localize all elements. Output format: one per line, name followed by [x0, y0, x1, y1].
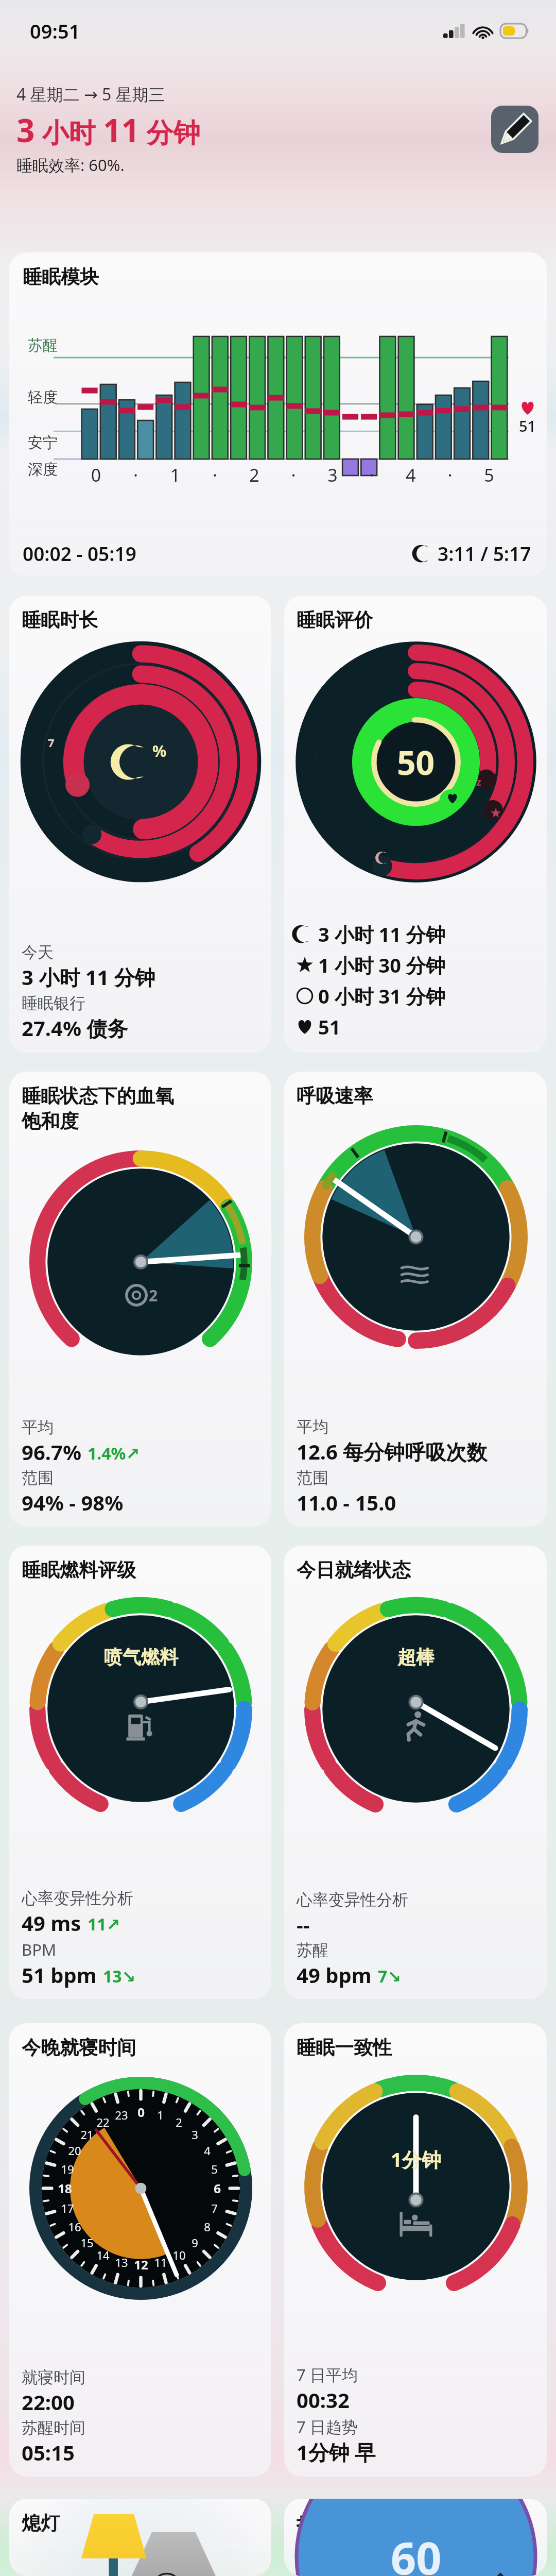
staticText: 49 bpm: [297, 1961, 372, 1989]
staticText: 2: [149, 1285, 158, 1306]
staticText: 50: [397, 740, 435, 785]
staticText: 22:00: [22, 2388, 75, 2416]
staticText: 0: [137, 2104, 145, 2121]
staticText: 今日就绪状态: [297, 1558, 411, 1582]
staticText: 11: [103, 108, 140, 151]
staticText: 5: [470, 463, 509, 487]
button[interactable]: 睡眠燃料评级: [9, 1546, 271, 1999]
staticText: 今晚就寝时间: [22, 2036, 136, 2060]
staticText: 3: [16, 108, 35, 151]
button[interactable]: 呼吸速率: [284, 1072, 547, 1527]
staticText: 睡眠状态下的血氧 饱和度: [22, 1084, 174, 1133]
staticText: 7 日趋势: [297, 2416, 358, 2437]
staticText: ·: [274, 463, 313, 487]
button[interactable]: 睡眠模块: [9, 252, 547, 577]
button[interactable]: 睡眠状态下的血氧 饱和度: [9, 1072, 271, 1527]
staticText: 3:11 / 5:17: [438, 540, 531, 566]
staticText: 11↗: [88, 1913, 120, 1936]
staticText: 2: [176, 2114, 182, 2130]
staticText: 0 小时 31 分钟: [318, 982, 445, 1009]
staticText: 15: [80, 2235, 94, 2250]
staticText: BPM: [22, 1939, 57, 1960]
staticText: 范围: [297, 1468, 328, 1488]
staticText: 11.0 - 15.0: [297, 1488, 396, 1516]
staticText: 睡眠银行: [22, 993, 85, 1013]
staticText: 睡眠燃料评级: [22, 1558, 136, 1582]
staticText: 打开 HeartWatch: [297, 2511, 454, 2537]
staticText: 7: [211, 2200, 218, 2216]
staticText: 深度: [28, 460, 58, 479]
button[interactable]: 今晚就寝时间: [9, 2023, 271, 2477]
staticText: 0: [76, 463, 116, 487]
staticText: 51: [519, 416, 536, 436]
staticText: 21: [80, 2127, 94, 2142]
button[interactable]: 睡眠时长: [9, 596, 271, 1053]
staticText: z: [476, 775, 481, 789]
staticText: 2: [235, 463, 274, 487]
button[interactable]: 睡眠评价: [284, 596, 547, 1053]
staticText: 1 小时 30 分钟: [318, 952, 445, 978]
staticText: 就寝时间: [22, 2367, 85, 2387]
button[interactable]: 编辑: [491, 106, 538, 153]
staticText: 5: [211, 2161, 218, 2177]
staticText: 1: [155, 463, 195, 487]
staticText: 22: [96, 2114, 110, 2130]
staticText: 94% - 98%: [22, 1488, 124, 1516]
button[interactable]: 打开 HeartWatch: [284, 2499, 547, 2576]
staticText: 49 ms: [22, 1909, 81, 1937]
staticText: 苏醒时间: [22, 2418, 85, 2438]
staticText: 51 bpm: [22, 1961, 97, 1989]
staticText: 13↘: [103, 1965, 136, 1988]
staticText: ·: [195, 463, 235, 487]
staticText: 00:02 - 05:19: [23, 540, 136, 566]
staticText: 7↘: [378, 1965, 402, 1988]
staticText: 范围: [22, 1468, 54, 1488]
staticText: 小时: [35, 113, 103, 150]
staticText: 今天: [22, 942, 54, 962]
staticText: 18: [58, 2180, 72, 2197]
staticText: 心率变异性分析: [297, 1890, 408, 1910]
staticText: 呼吸速率: [297, 1084, 373, 1108]
staticText: 14: [96, 2247, 110, 2263]
button[interactable]: 睡眠一致性: [284, 2023, 547, 2477]
staticText: ·: [430, 463, 470, 487]
staticText: 4: [204, 2143, 211, 2158]
staticText: 1分钟 早: [297, 2438, 376, 2466]
button[interactable]: 熄灯: [9, 2499, 271, 2576]
staticText: 12.6 每分钟呼吸次数: [297, 1437, 488, 1466]
button[interactable]: 今日就绪状态: [284, 1546, 547, 1999]
staticText: 7 日平均: [297, 2364, 358, 2385]
staticText: ·: [116, 463, 155, 487]
staticText: 4: [391, 463, 430, 487]
staticText: 6: [214, 2180, 221, 2197]
staticText: 睡眠评价: [297, 608, 373, 632]
staticText: 睡眠一致性: [297, 2036, 392, 2060]
staticText: 轻度: [28, 388, 58, 407]
staticText: 4 星期二 → 5 星期三: [16, 83, 165, 106]
staticText: 心率变异性分析: [22, 1888, 133, 1908]
staticText: 11: [154, 2255, 167, 2270]
staticText: 19: [61, 2161, 74, 2177]
staticText: 安宁: [28, 433, 58, 452]
staticText: --: [297, 1910, 310, 1938]
staticText: %: [152, 740, 167, 761]
staticText: 96.7%: [22, 1438, 81, 1466]
staticText: 睡眠时长: [22, 608, 98, 632]
staticText: 60: [391, 2527, 442, 2576]
staticText: 16: [68, 2219, 81, 2234]
staticText: 13: [115, 2255, 128, 2270]
staticText: 分钟: [140, 113, 200, 150]
staticText: 3: [192, 2127, 198, 2142]
staticText: ·: [352, 463, 391, 487]
staticText: 00:32: [297, 2386, 350, 2414]
staticText: 苏醒: [28, 336, 58, 355]
staticText: 20: [68, 2143, 81, 2158]
staticText: 1: [157, 2107, 164, 2123]
staticText: 3 小时 11 分钟: [318, 921, 445, 947]
staticText: 喷气燃料: [104, 1646, 178, 1669]
staticText: 8: [204, 2219, 211, 2234]
staticText: 9: [192, 2235, 198, 2250]
staticText: 苏醒: [297, 1940, 328, 1960]
staticText: 1.4%↗: [88, 1442, 140, 1465]
staticText: 睡眠模块: [23, 265, 99, 289]
